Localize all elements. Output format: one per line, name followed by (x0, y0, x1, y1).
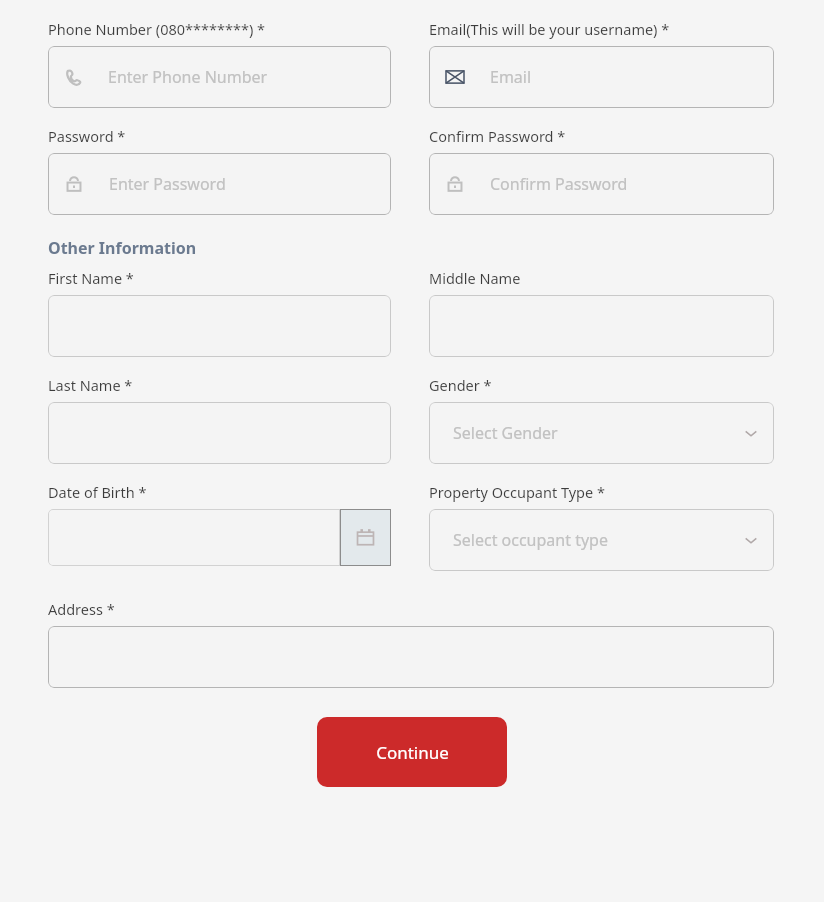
staticText: Gender * (429, 375, 492, 395)
staticText: Email(This will be your username) * (429, 19, 670, 39)
button[interactable] (48, 295, 391, 357)
staticText: Select Gender (453, 422, 558, 444)
button[interactable]: Continue (317, 717, 507, 787)
staticText: Enter Password (109, 173, 226, 195)
staticText: Last Name * (48, 375, 133, 395)
button[interactable]: Enter Password (48, 153, 391, 215)
button[interactable]: Confirm Password (429, 153, 774, 215)
staticText: Password * (48, 126, 126, 146)
staticText: Enter Phone Number (108, 66, 268, 88)
button[interactable] (48, 626, 774, 688)
staticText: Confirm Password (490, 173, 628, 195)
staticText: Continue (376, 741, 449, 764)
staticText: Phone Number (080********) * (48, 19, 266, 39)
staticText: Select occupant type (453, 529, 608, 551)
staticText: Date of Birth * (48, 482, 147, 502)
staticText: Address * (48, 599, 115, 619)
button[interactable]: Email (429, 46, 774, 108)
button[interactable]: Open date picker (340, 509, 391, 566)
staticText: Middle Name (429, 268, 521, 288)
button[interactable]: Select occupant type (429, 509, 774, 571)
staticText: Property Occupant Type * (429, 482, 605, 502)
staticText: Email (490, 66, 532, 88)
staticText: Other Information (48, 237, 197, 259)
button[interactable]: Select Gender (429, 402, 774, 464)
button[interactable] (429, 295, 774, 357)
button[interactable] (48, 402, 391, 464)
button[interactable]: Enter Phone Number (48, 46, 391, 108)
button[interactable] (48, 509, 340, 566)
staticText: First Name * (48, 268, 134, 288)
staticText: Confirm Password * (429, 126, 566, 146)
